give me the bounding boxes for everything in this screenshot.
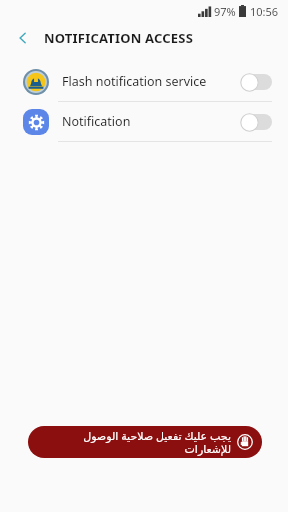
staticText: NOTIFICATION ACCESS [44,29,194,47]
staticText: يجب عليك تفعيل صلاحية الوصول للإشعارات [37,428,231,456]
staticText: Flash notification service [62,73,240,90]
button[interactable]: Toggle [240,112,274,132]
staticText: Notification [62,113,240,130]
button[interactable]: يجب عليك تفعيل صلاحية الوصول للإشعارات [28,426,262,458]
staticText: 10:56 [250,4,279,19]
button[interactable]: Toggle [240,72,274,92]
staticText: 97% [214,4,236,19]
button[interactable]: Back [10,25,36,51]
button[interactable]: Notification [0,102,288,141]
button[interactable]: Flash notification service [0,62,288,101]
